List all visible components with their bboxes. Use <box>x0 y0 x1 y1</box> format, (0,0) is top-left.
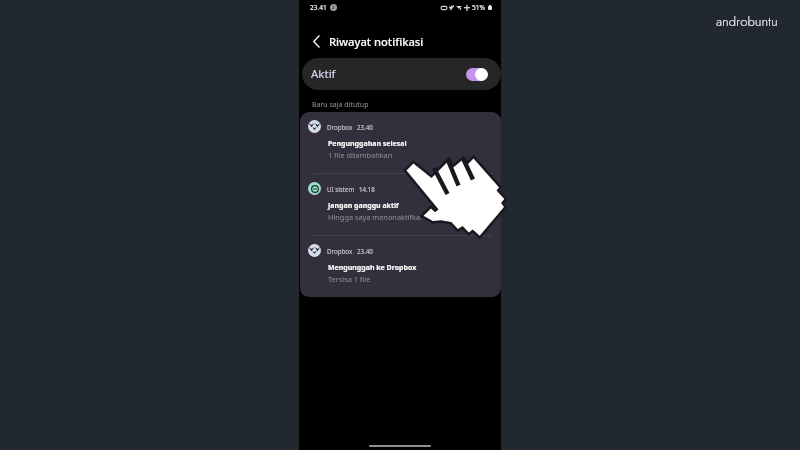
staticText: Pengunggahan selesai <box>328 139 407 149</box>
staticText: 14.18 <box>359 185 375 193</box>
staticText: 23.40 <box>357 247 373 255</box>
staticText: Tersisa 1 file <box>328 274 371 284</box>
staticText: 1 file ditambahkan <box>328 150 393 160</box>
staticText: 23.40 <box>357 123 373 131</box>
staticText: Dropbox <box>327 247 353 255</box>
staticText: Riwayat notifikasi <box>329 34 424 49</box>
staticText: UI sistem <box>327 185 355 193</box>
staticText: Jangan ganggu aktif <box>328 201 399 211</box>
button[interactable]: Aktif <box>302 58 501 90</box>
button[interactable]: Dropbox <box>300 236 501 297</box>
staticText: 23.41 <box>310 3 327 12</box>
button[interactable]: Dropbox <box>300 112 501 173</box>
staticText: Mengunggah ke Dropbox <box>328 263 417 273</box>
button[interactable]: UI sistem <box>300 174 501 235</box>
button[interactable]: Back <box>308 33 324 49</box>
staticText: Baru saja ditutup <box>312 100 369 110</box>
staticText: Hingga saya menonaktifka. <box>328 212 423 222</box>
staticText: Aktif <box>311 66 336 82</box>
staticText: 51% <box>472 3 486 12</box>
staticText: 2 <box>332 5 335 11</box>
staticText: Dropbox <box>327 123 353 131</box>
staticText: androbuntu <box>716 12 778 31</box>
